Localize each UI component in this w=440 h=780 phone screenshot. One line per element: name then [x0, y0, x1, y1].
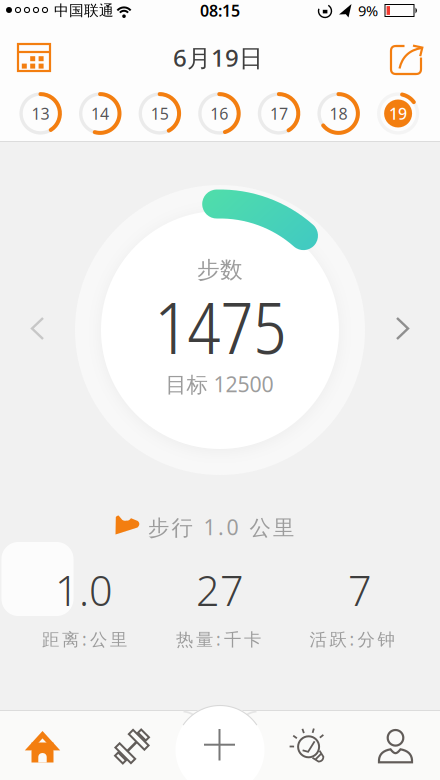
staticText: 19 [389, 103, 407, 124]
staticText: 活跃:分钟 [309, 627, 394, 650]
staticText: 6月19日 [173, 42, 263, 73]
staticText: 目标 12500 [165, 370, 273, 398]
staticText: 27 [196, 563, 244, 617]
staticText: 13 [31, 103, 49, 124]
staticText: 08:15 [200, 0, 240, 21]
staticText: 中国联通 [54, 1, 114, 19]
staticText: 步数 [197, 256, 243, 284]
staticText: 15 [151, 103, 169, 124]
staticText: 14 [91, 103, 109, 124]
staticText: 9% [358, 1, 378, 20]
staticText: 18 [329, 103, 347, 124]
staticText: 7 [348, 563, 372, 617]
staticText: 1.0 [55, 563, 113, 617]
staticText: 16 [210, 103, 228, 124]
staticText: 1475 [154, 277, 286, 375]
staticText: 17 [270, 103, 288, 124]
staticText: 距离:公里 [42, 627, 127, 650]
staticText: 步行 1.0 公里 [148, 513, 294, 541]
staticText: 热量:千卡 [176, 627, 261, 650]
